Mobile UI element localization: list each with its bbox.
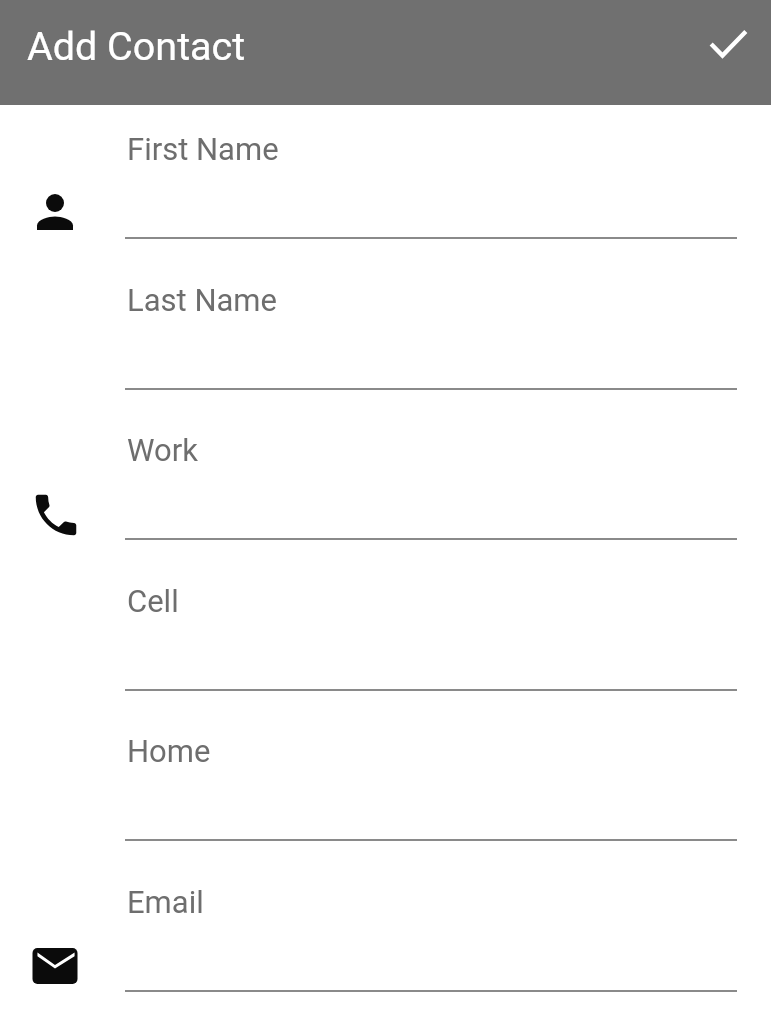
button[interactable]: Email [0, 858, 771, 1009]
staticText: Cell [127, 583, 179, 619]
staticText: Last Name [127, 282, 277, 318]
staticText: Work [127, 432, 198, 468]
button[interactable]: Save contact [696, 11, 760, 75]
button[interactable]: Last Name [0, 256, 771, 407]
staticText: First Name [127, 131, 279, 167]
button[interactable]: First Name [0, 105, 771, 256]
staticText: Add Contact [27, 23, 246, 69]
button[interactable]: Work [0, 406, 771, 557]
button[interactable]: Cell [0, 557, 771, 708]
staticText: Email [127, 884, 204, 920]
button[interactable]: Home [0, 707, 771, 858]
staticText: Home [127, 733, 211, 769]
